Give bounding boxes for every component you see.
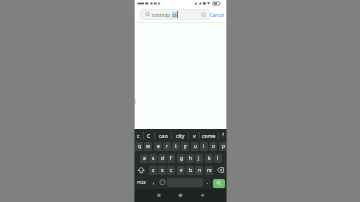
button[interactable]: C	[144, 129, 154, 141]
staticText: come	[202, 132, 216, 139]
button[interactable]: can	[155, 129, 171, 141]
staticText: y	[184, 143, 187, 150]
button[interactable]: x	[158, 166, 166, 175]
button[interactable]: controlp	[140, 9, 210, 20]
staticText: Cancel	[210, 12, 225, 18]
staticText: x	[161, 167, 164, 174]
button[interactable]: a	[140, 154, 148, 163]
staticText: can	[159, 132, 168, 139]
button[interactable]: h	[186, 154, 194, 163]
button[interactable]: b	[186, 166, 194, 175]
button[interactable]: s	[149, 154, 157, 163]
button[interactable]: k	[205, 154, 213, 163]
staticText: q	[138, 143, 141, 150]
button[interactable]	[135, 166, 148, 175]
button[interactable]: v	[177, 166, 185, 175]
staticText: c	[170, 167, 173, 174]
staticText: c	[137, 132, 140, 139]
button[interactable]: z	[149, 166, 157, 175]
button[interactable]: y	[181, 142, 189, 151]
button[interactable]: p	[219, 142, 227, 151]
staticText: b	[189, 167, 192, 174]
staticText: r	[166, 143, 168, 150]
button[interactable]: c	[134, 129, 143, 141]
staticText: a	[143, 155, 146, 162]
staticText: ,	[153, 179, 155, 186]
staticText: m	[207, 167, 212, 174]
button[interactable]: .	[204, 178, 212, 187]
staticText: n	[198, 167, 201, 174]
button[interactable]: v	[189, 129, 199, 141]
button[interactable]: j	[195, 154, 203, 163]
button[interactable]: i	[200, 142, 208, 151]
staticText: h	[189, 155, 192, 162]
staticText: t	[175, 143, 177, 150]
staticText: .	[207, 179, 209, 186]
staticText: controlp	[152, 12, 171, 18]
staticText: v	[180, 167, 183, 174]
staticText: d	[161, 155, 164, 162]
staticText: ?123	[137, 180, 146, 185]
button[interactable]	[134, 189, 165, 202]
staticText: i	[203, 143, 205, 150]
button[interactable]	[214, 166, 227, 175]
staticText: k	[208, 155, 211, 162]
button[interactable]: g	[177, 154, 185, 163]
button[interactable]	[219, 129, 227, 141]
button[interactable]	[158, 178, 167, 187]
staticText: e	[157, 143, 160, 150]
button[interactable]: come	[200, 129, 218, 141]
button[interactable]: q	[135, 142, 143, 151]
button[interactable]: c	[167, 166, 175, 175]
staticText: city	[176, 132, 185, 139]
button[interactable]: r	[163, 142, 171, 151]
button[interactable]: f	[167, 154, 175, 163]
button[interactable]: m	[205, 166, 213, 175]
staticText: l	[217, 155, 219, 162]
button[interactable]: l	[214, 154, 222, 163]
staticText: o	[212, 143, 215, 150]
button[interactable]: city	[172, 129, 188, 141]
button[interactable]: n	[195, 166, 203, 175]
button[interactable]: w	[144, 142, 152, 151]
button[interactable]: e	[154, 142, 162, 151]
staticText: z	[152, 167, 155, 174]
staticText: v	[193, 132, 196, 139]
staticText: u	[194, 143, 197, 150]
staticText: w	[146, 143, 150, 150]
staticText: p	[222, 143, 225, 150]
staticText: j	[198, 155, 200, 162]
staticText: C	[147, 132, 151, 139]
button[interactable]	[213, 179, 225, 188]
button[interactable]: t	[172, 142, 180, 151]
staticText: g	[180, 155, 183, 162]
button[interactable]: ?123	[135, 178, 148, 187]
button[interactable]: o	[209, 142, 217, 151]
staticText: s	[152, 155, 155, 162]
button[interactable]: Cancel	[210, 12, 225, 18]
staticText: ce	[172, 12, 177, 18]
button[interactable]	[196, 189, 227, 202]
button[interactable]: ,	[149, 178, 158, 187]
button[interactable]: d	[158, 154, 166, 163]
button[interactable]	[165, 189, 196, 202]
button[interactable]: u	[191, 142, 199, 151]
staticText: f	[170, 155, 172, 162]
